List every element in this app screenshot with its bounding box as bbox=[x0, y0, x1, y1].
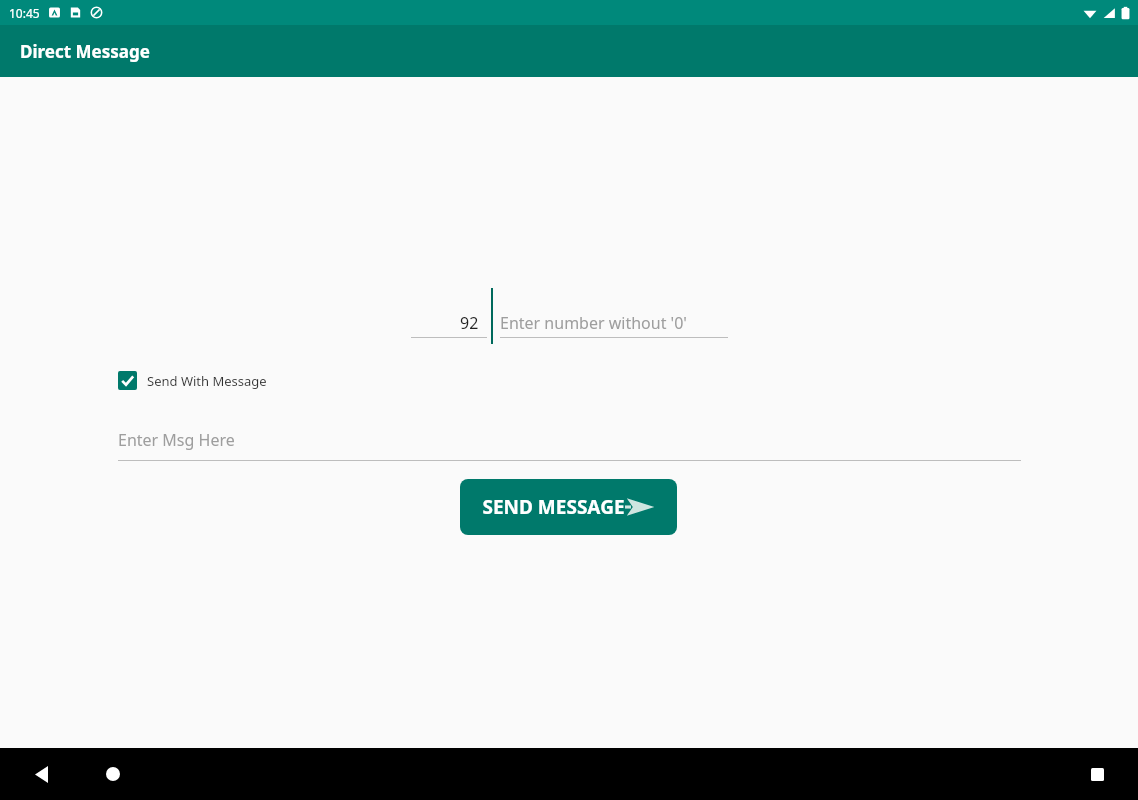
staticText: Enter Msg Here bbox=[118, 429, 235, 451]
staticText: Enter number without '0' bbox=[500, 312, 687, 334]
button[interactable]: Home bbox=[92, 753, 134, 795]
button[interactable]: Enter number without '0' bbox=[500, 290, 728, 346]
staticText: SEND MESSAGE bbox=[482, 494, 625, 520]
button[interactable]: 92 bbox=[411, 290, 487, 346]
button[interactable]: Back bbox=[20, 753, 62, 795]
staticText: 10:45 bbox=[9, 5, 40, 21]
button[interactable]: SEND MESSAGE bbox=[460, 479, 677, 535]
staticText: Direct Message bbox=[20, 40, 150, 63]
staticText: Send With Message bbox=[147, 372, 267, 390]
button[interactable]: Send With Message bbox=[118, 371, 267, 390]
button[interactable]: Recent apps bbox=[1076, 753, 1118, 795]
staticText: 92 bbox=[460, 312, 479, 334]
button[interactable]: Enter Msg Here bbox=[118, 417, 1021, 461]
